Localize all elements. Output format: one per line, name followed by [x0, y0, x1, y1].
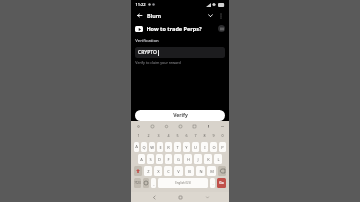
staticText: M — [210, 169, 214, 174]
staticText: CRYPTO — [138, 49, 157, 56]
button[interactable]: K — [204, 154, 212, 164]
staticText: How to trade Perps? — [146, 25, 202, 32]
button[interactable]: J — [194, 154, 202, 164]
button[interactable]: N — [196, 166, 205, 176]
staticText: L — [217, 157, 220, 162]
button[interactable]: , — [151, 178, 156, 188]
staticText: E — [159, 145, 162, 150]
button[interactable]: gear — [135, 123, 141, 129]
button[interactable]: Menu — [218, 25, 225, 32]
staticText: 2 — [147, 133, 150, 138]
button[interactable]: F — [165, 154, 172, 164]
button[interactable]: 1 — [134, 131, 142, 140]
button[interactable]: G — [174, 154, 182, 164]
button[interactable]: Y — [183, 142, 190, 152]
staticText: I — [204, 145, 206, 150]
button[interactable]: 3 — [154, 131, 162, 140]
staticText: R — [167, 145, 170, 150]
staticText: N — [199, 169, 203, 174]
button[interactable]: D — [156, 154, 163, 164]
button[interactable]: I — [201, 142, 208, 152]
button[interactable]: mic — [205, 123, 211, 129]
button[interactable]: U — [192, 142, 199, 152]
staticText: Z — [147, 169, 150, 174]
button[interactable]: Back — [135, 11, 144, 20]
staticText: Q — [142, 145, 146, 150]
button[interactable]: Home — [176, 193, 184, 201]
button[interactable]: More options — [216, 11, 225, 20]
button[interactable]: E — [157, 142, 163, 152]
staticText: Y — [185, 145, 188, 150]
button[interactable]: B — [185, 166, 194, 176]
staticText: . — [212, 181, 214, 186]
button[interactable]: dots — [219, 123, 225, 129]
button[interactable]: S — [147, 154, 154, 164]
staticText: Verify to claim your reward — [135, 60, 181, 65]
button[interactable]: . — [210, 178, 215, 188]
button[interactable]: 5 — [174, 131, 181, 140]
button[interactable]: X — [154, 166, 162, 176]
button[interactable]: L — [214, 154, 222, 164]
button[interactable]: Expand — [206, 11, 215, 20]
staticText: P — [221, 145, 224, 150]
button[interactable]: 6 — [183, 131, 190, 140]
staticText: 11:22 — [135, 2, 146, 7]
button[interactable]: CRYPTO — [135, 47, 225, 58]
staticText: K — [207, 157, 210, 162]
button[interactable]: Shift — [134, 166, 142, 176]
staticText: V — [177, 169, 180, 174]
button[interactable]: Emoji — [143, 178, 149, 188]
button[interactable]: R — [165, 142, 172, 152]
button[interactable]: 8 — [201, 131, 208, 140]
staticText: Go — [219, 181, 224, 185]
staticText: T — [176, 145, 179, 150]
button[interactable]: O — [210, 142, 217, 152]
button[interactable]: 7 — [192, 131, 199, 140]
staticText: 5 — [176, 133, 179, 138]
button[interactable]: V — [174, 166, 183, 176]
staticText: 4 — [167, 133, 170, 138]
button[interactable]: Go — [217, 178, 226, 188]
button[interactable]: T — [174, 142, 181, 152]
button[interactable]: Recents — [203, 193, 211, 201]
button[interactable]: A — [138, 154, 145, 164]
staticText: O — [212, 145, 216, 150]
staticText: 6 — [185, 133, 188, 138]
button[interactable]: sticker — [163, 123, 169, 129]
button[interactable]: gif — [177, 123, 183, 129]
button[interactable]: Verify — [135, 110, 225, 121]
staticText: U — [194, 145, 197, 150]
button[interactable]: clip — [149, 123, 155, 129]
staticText: 8 — [203, 133, 206, 138]
button[interactable]: Z — [144, 166, 152, 176]
button[interactable]: H — [184, 154, 192, 164]
button[interactable]: Backspace — [218, 166, 226, 176]
button[interactable]: 2 — [144, 131, 152, 140]
button[interactable]: note — [191, 123, 197, 129]
button[interactable]: 4 — [164, 131, 172, 140]
staticText: S — [149, 157, 152, 162]
button[interactable]: 0 — [219, 131, 226, 140]
staticText: F — [167, 157, 170, 162]
button[interactable]: Q — [141, 142, 147, 152]
staticText: G — [177, 157, 180, 162]
button[interactable]: ?123 — [134, 178, 141, 188]
staticText: 9 — [212, 133, 215, 138]
staticText: ?123 — [134, 181, 141, 185]
button[interactable]: C — [164, 166, 172, 176]
button[interactable]: M — [207, 166, 216, 176]
button[interactable]: P — [219, 142, 226, 152]
staticText: X — [157, 169, 160, 174]
staticText: 1 — [137, 133, 140, 138]
button[interactable]: Back — [150, 193, 158, 201]
button[interactable]: 9 — [210, 131, 217, 140]
button[interactable]: Space — [158, 178, 208, 188]
staticText: W — [150, 145, 154, 150]
button[interactable]: How to trade Perps? — [131, 22, 229, 35]
button[interactable]: Caps — [134, 142, 139, 152]
staticText: Verification — [135, 38, 159, 44]
staticText: B — [188, 169, 191, 174]
button[interactable]: W — [149, 142, 155, 152]
staticText: 0 — [221, 133, 224, 138]
staticText: D — [158, 157, 161, 162]
